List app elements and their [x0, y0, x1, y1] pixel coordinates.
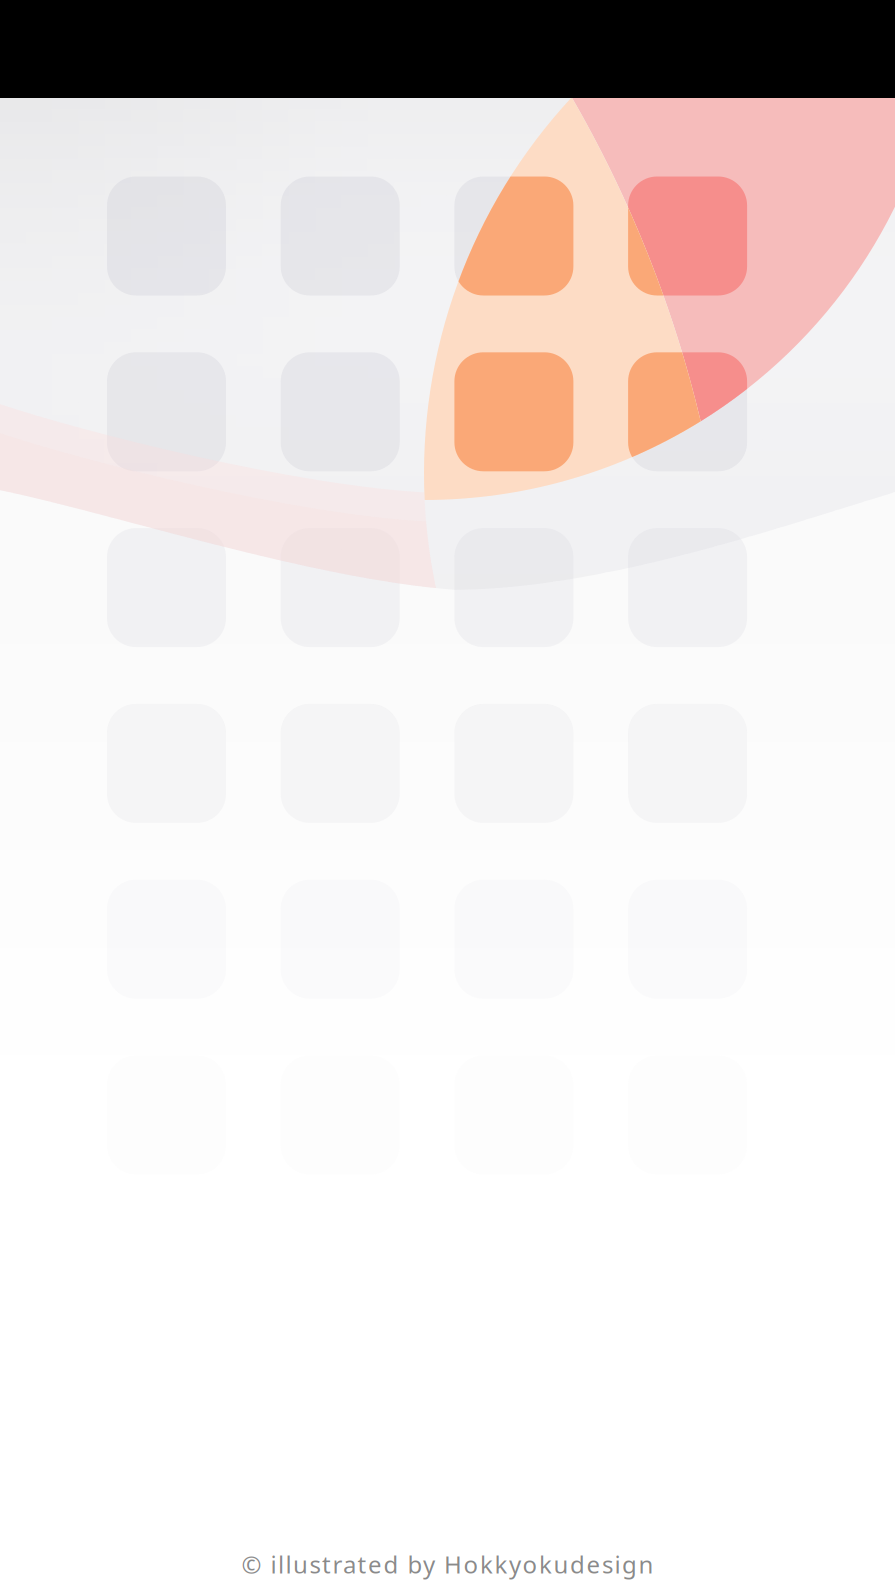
staticText: © illustrated by Hokkyokudesign [241, 1548, 653, 1580]
